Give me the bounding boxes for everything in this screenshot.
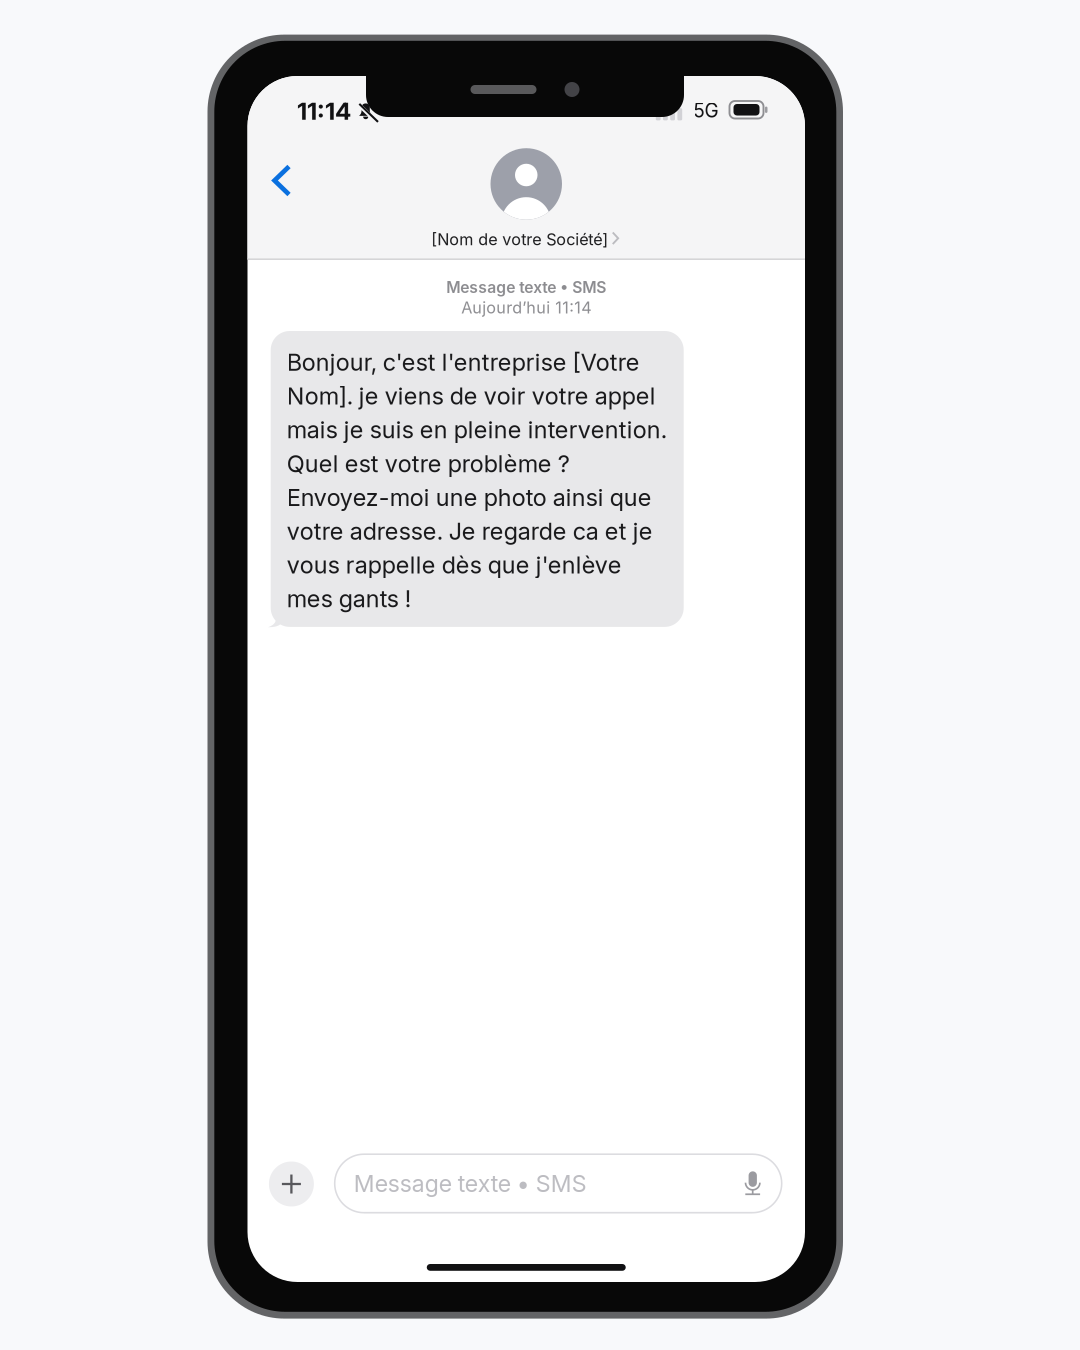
staticText: 11:14	[297, 96, 351, 126]
staticText: 5G	[693, 99, 718, 122]
staticText: Aujourd’hui 11:14	[461, 298, 591, 317]
button[interactable]: [Nom de votre Société]	[386, 148, 666, 249]
staticText: Bonjour, c'est l'entreprise [Votre Nom].…	[287, 348, 667, 613]
staticText: [Nom de votre Société]	[431, 230, 608, 249]
button[interactable]: Add attachment	[269, 1161, 314, 1206]
staticText: Message texte • SMS	[446, 278, 606, 297]
staticText: Message texte • SMS	[354, 1169, 587, 1197]
button[interactable]: Back	[256, 147, 307, 214]
button[interactable]: Message texte • SMS	[335, 1154, 782, 1213]
